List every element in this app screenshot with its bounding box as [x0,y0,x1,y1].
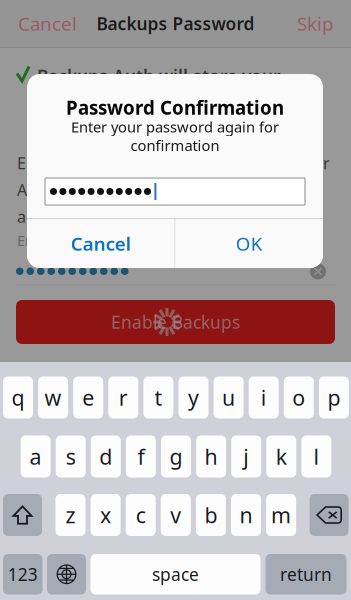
staticText: t [154,383,162,412]
staticText: e [82,383,94,412]
staticText: h [205,442,218,471]
button[interactable]: Cancel [0,0,87,48]
button[interactable]: Skip [287,0,351,48]
button[interactable]: x [91,494,121,536]
button[interactable]: e [73,376,103,418]
staticText: Enter your password again for [71,117,279,136]
button[interactable]: Clear text [307,260,329,282]
staticText: r [119,383,128,412]
staticText: Backups Password [96,12,254,35]
button[interactable]: l [301,435,331,477]
staticText: a [30,442,42,471]
staticText: Enter a password [17,230,136,250]
staticText: confirmation [130,135,219,155]
staticText: q [11,383,24,412]
button[interactable]: p [319,376,349,418]
staticText: o [292,383,305,412]
staticText: space [152,563,199,586]
staticText: return [280,563,332,586]
button[interactable]: OK [175,219,323,268]
button[interactable]: o [284,376,314,418]
staticText: g [169,442,182,471]
staticText: Auth tokens in your iCloud keychain. [17,179,293,200]
button[interactable]: g [161,435,191,477]
button[interactable]: space [90,554,260,594]
staticText: Cancel [71,231,131,256]
button[interactable]: v [161,494,191,536]
staticText: y [188,383,199,412]
button[interactable]: y [178,376,208,418]
staticText: k [276,442,287,471]
staticText: p [327,383,340,412]
staticText: i [261,383,267,412]
staticText: Enable Backups [111,310,240,333]
button[interactable]: f [126,435,156,477]
staticText: u [222,383,235,412]
staticText: j [243,442,249,471]
button[interactable]: w [38,376,68,418]
staticText: OK [236,231,263,256]
button[interactable]: s [56,435,86,477]
staticText: s [66,442,76,471]
staticText: Password Confirmation [66,95,284,120]
staticText: m [271,501,291,529]
staticText: c [136,501,146,529]
button[interactable]: Cancel [27,219,174,268]
button[interactable]: c [126,494,156,536]
button[interactable]: Enable Backups [16,300,335,344]
staticText: Backups Auth will store your [37,64,281,87]
button[interactable]: return [265,554,346,594]
button[interactable]: j [231,435,261,477]
button[interactable]: d [91,435,121,477]
button[interactable]: 123 [3,554,42,594]
staticText: Skip [297,11,333,36]
button[interactable]: z [55,494,85,536]
staticText: w [45,383,62,412]
staticText: Encrypted backups of your Authenticator [17,152,330,174]
button[interactable]: i [249,376,279,418]
staticText: account. [17,206,82,227]
staticText: b [204,501,217,529]
staticText: z [65,501,75,529]
button[interactable]: t [143,376,173,418]
staticText: Cancel [18,11,77,36]
button[interactable]: a [21,435,51,477]
staticText: l [313,442,319,471]
button[interactable]: u [214,376,244,418]
button[interactable]: n [231,494,261,536]
button[interactable]: Next keyboard [47,554,86,594]
button[interactable]: Shift [3,494,42,536]
button[interactable]: r [108,376,138,418]
staticText: x [100,501,111,529]
button[interactable]: b [196,494,226,536]
button[interactable]: m [266,494,296,536]
button[interactable]: Delete [310,494,349,536]
button[interactable]: q [3,376,33,418]
staticText: v [170,501,181,529]
button[interactable]: k [266,435,296,477]
button[interactable]: h [196,435,226,477]
staticText: n [239,501,252,529]
staticText: f [137,442,144,471]
staticText: d [99,442,112,471]
staticText: 123 [8,563,38,586]
